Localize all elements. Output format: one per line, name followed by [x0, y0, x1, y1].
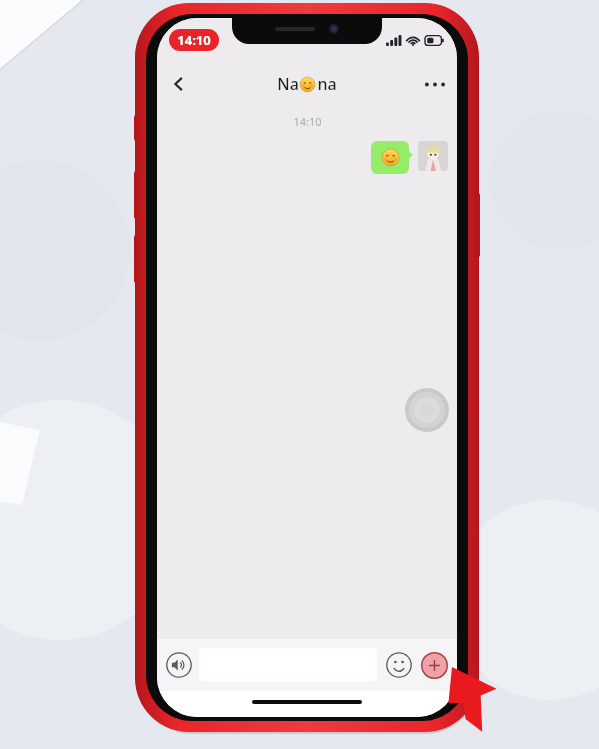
staticText: 14:10 — [177, 31, 211, 49]
button[interactable]: More options — [413, 62, 457, 106]
button[interactable]: Avatar — [418, 141, 448, 171]
staticText: Na — [277, 73, 299, 95]
button[interactable]: Emoji — [384, 650, 414, 680]
staticText: na — [317, 73, 337, 95]
button[interactable]: 14:10 — [169, 29, 219, 51]
button[interactable]: Back — [157, 62, 201, 106]
button[interactable] — [371, 141, 413, 174]
button[interactable]: Assistive touch — [405, 388, 449, 432]
button[interactable]: Voice message — [164, 650, 194, 680]
button[interactable]: More functions — [418, 649, 450, 681]
staticText: 14:10 — [293, 114, 322, 129]
